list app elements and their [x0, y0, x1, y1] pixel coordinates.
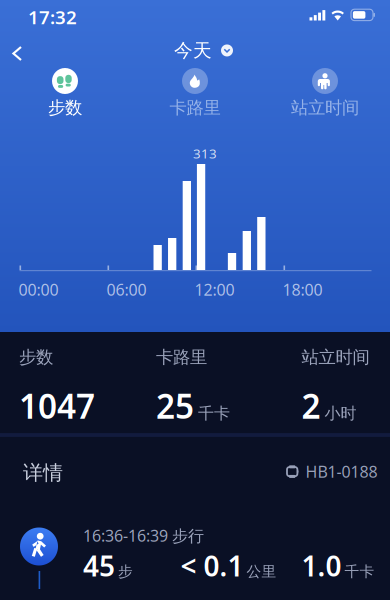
staticText: 12:00 — [194, 279, 234, 300]
staticText: 06:00 — [106, 279, 146, 300]
staticText: 公里 — [246, 563, 276, 581]
staticText: < 0.1 — [180, 547, 243, 584]
staticText: 步 — [118, 563, 133, 581]
staticText: 步数 — [19, 346, 53, 368]
button[interactable]: 今天 — [164, 33, 243, 68]
staticText: 1047 — [19, 384, 95, 428]
staticText: 313 — [193, 144, 217, 162]
staticText: 站立时间 — [291, 97, 359, 118]
button[interactable]: 卡路里 — [130, 68, 260, 118]
staticText: 步数 — [48, 97, 82, 118]
staticText: 16:36-16:39 步行 — [83, 525, 204, 546]
staticText: 25 — [156, 384, 194, 428]
button[interactable]: HB1-0188 — [277, 452, 388, 491]
staticText: 详情 — [23, 460, 63, 485]
button[interactable]: 16:36-16:39 步行 — [0, 525, 372, 589]
staticText: 2 — [301, 384, 320, 428]
staticText: 1.0 — [301, 547, 341, 584]
staticText: 00:00 — [18, 279, 58, 300]
staticText: 卡路里 — [156, 346, 207, 368]
staticText: 千卡 — [344, 563, 374, 581]
button[interactable]: Back — [0, 36, 35, 71]
staticText: 小时 — [324, 404, 356, 423]
staticText: HB1-0188 — [306, 461, 378, 482]
staticText: 卡路里 — [169, 97, 220, 118]
staticText: 18:00 — [282, 279, 322, 300]
staticText: 17:32 — [28, 5, 77, 29]
button[interactable]: 站立时间 — [260, 68, 390, 118]
staticText: 千卡 — [198, 404, 230, 423]
staticText: 站立时间 — [301, 346, 369, 368]
button[interactable]: 步数 — [0, 68, 130, 118]
staticText: 45 — [83, 547, 115, 584]
staticText: 今天 — [174, 39, 212, 62]
